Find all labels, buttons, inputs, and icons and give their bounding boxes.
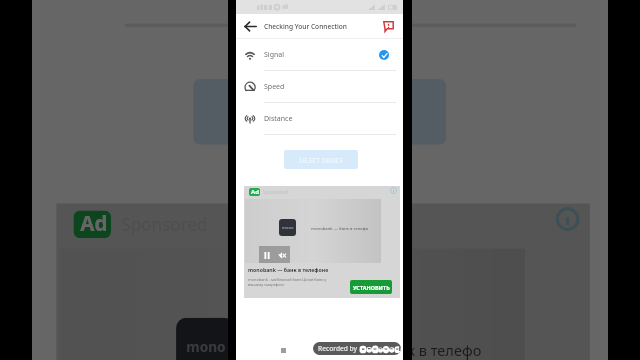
staticText: SELECT DEVICE bbox=[299, 156, 343, 164]
button[interactable]: Ad information bbox=[389, 186, 398, 195]
button[interactable]: SELECT DEVICE bbox=[193, 79, 446, 145]
staticText: monobank — банк в телефоне bbox=[248, 266, 329, 273]
staticText: Ad bbox=[80, 210, 108, 238]
button[interactable]: Unmute bbox=[276, 249, 288, 261]
staticText: Sponsored bbox=[263, 189, 289, 196]
button[interactable]: Distance bbox=[236, 103, 403, 134]
staticText: Signal bbox=[264, 50, 285, 60]
staticText: Distance bbox=[264, 114, 293, 124]
button[interactable]: Distance bbox=[32, 0, 608, 24]
staticText: mono bbox=[282, 225, 294, 230]
staticText: Checking Your Connection bbox=[264, 22, 347, 31]
button[interactable]: SELECT DEVICE bbox=[284, 150, 358, 169]
staticText: Recorded by bbox=[318, 344, 357, 353]
button[interactable]: Pause bbox=[261, 249, 273, 261]
button[interactable]: УСТАНОВИТЬ bbox=[350, 280, 392, 294]
staticText: вашому смартфоні bbox=[248, 282, 284, 287]
button[interactable]: Signal bbox=[236, 39, 403, 70]
button[interactable]: Ad information bbox=[552, 204, 583, 235]
staticText: mono bbox=[186, 338, 227, 356]
staticText: УСТАНОВИТЬ bbox=[353, 284, 390, 291]
staticText: monobank — банк в телефо bbox=[285, 338, 484, 359]
button[interactable]: Back bbox=[236, 14, 264, 38]
staticText: SELECT DEVICE bbox=[244, 100, 395, 127]
staticText: Speed bbox=[264, 82, 285, 92]
staticText: monobank — банк в телефо bbox=[311, 225, 369, 231]
button[interactable]: Report a problem bbox=[377, 14, 399, 38]
staticText: Ad bbox=[251, 188, 259, 196]
staticText: monobank - мобільний банк Цілий банк у bbox=[248, 277, 327, 282]
button[interactable]: Recent apps bbox=[277, 344, 289, 356]
button[interactable]: Speed bbox=[236, 71, 403, 102]
